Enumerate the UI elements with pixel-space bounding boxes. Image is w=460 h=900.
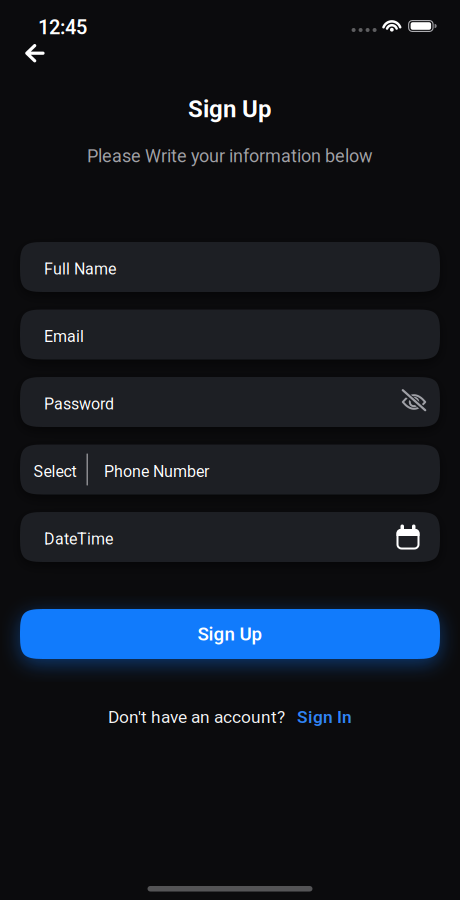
staticText: Don't have an account? [108, 707, 285, 727]
button[interactable]: Back [22, 41, 48, 65]
button[interactable]: Select [20, 444, 76, 494]
staticText: Sign Up [197, 623, 262, 645]
button[interactable]: Pick date [394, 522, 421, 551]
secureTextField[interactable]: Password [20, 377, 440, 427]
staticText: Sign Up [188, 95, 272, 123]
textField[interactable]: Full Name [20, 242, 440, 292]
textField[interactable]: Email [20, 309, 440, 359]
button[interactable]: Show password [399, 389, 429, 415]
button[interactable]: Sign Up [20, 609, 440, 659]
staticText: Password [44, 395, 114, 413]
textField[interactable]: Phone Number [20, 444, 440, 494]
staticText: Please Write your information below [87, 145, 373, 167]
staticText: DateTime [44, 530, 113, 548]
staticText: Sign In [297, 707, 352, 727]
staticText: Full Name [44, 260, 116, 278]
button[interactable]: Sign In [297, 707, 352, 727]
staticText: 12:45 [38, 16, 87, 39]
staticText: Select [33, 462, 76, 481]
staticText: Phone Number [104, 462, 209, 481]
textField[interactable]: DateTime [20, 512, 440, 562]
staticText: Email [44, 327, 84, 346]
